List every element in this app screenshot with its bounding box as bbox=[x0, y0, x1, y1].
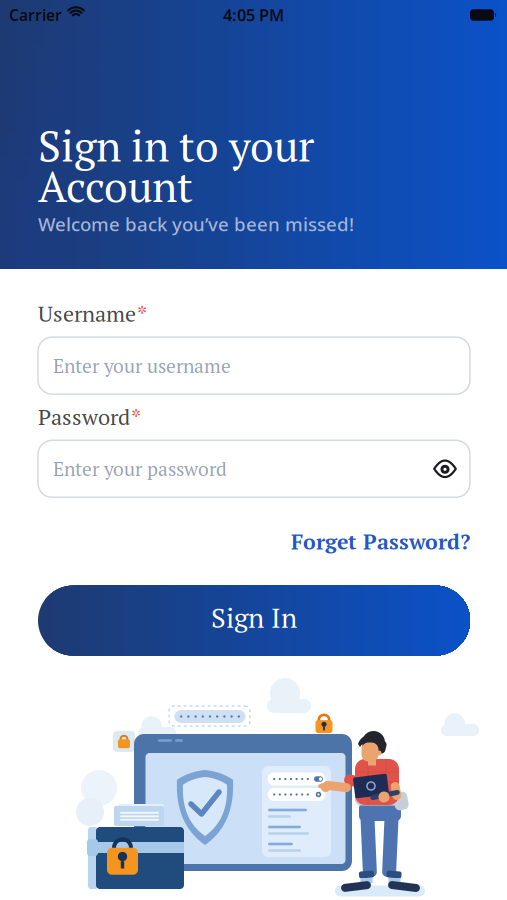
staticText: Carrier bbox=[9, 5, 62, 25]
staticText: Enter your username bbox=[53, 353, 231, 378]
button[interactable]: Enter your username bbox=[38, 337, 470, 394]
staticText: Password bbox=[38, 402, 130, 431]
button[interactable] bbox=[433, 459, 457, 478]
button[interactable]: Enter your password bbox=[38, 440, 470, 497]
staticText: Sign In bbox=[211, 599, 297, 636]
staticText: Username bbox=[38, 299, 136, 328]
staticText: Forget Password? bbox=[291, 527, 470, 556]
staticText: 4:05 PM bbox=[223, 4, 284, 26]
staticText: * bbox=[131, 402, 141, 431]
button[interactable]: Forget Password? bbox=[291, 527, 470, 556]
staticText: * bbox=[137, 299, 147, 328]
button[interactable]: Sign In bbox=[38, 586, 470, 656]
staticText: Enter your password bbox=[53, 456, 227, 482]
staticText: Welcome back you’ve been missed! bbox=[38, 211, 354, 237]
staticText: Sign in to your Account bbox=[38, 125, 314, 206]
